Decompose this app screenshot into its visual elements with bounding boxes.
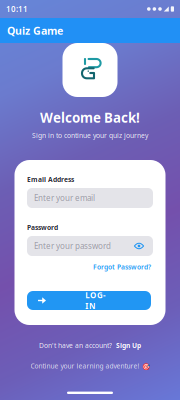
staticText: Quiz Game — [7, 23, 63, 38]
button[interactable]: Forgot Password? — [93, 263, 151, 271]
button[interactable]: Sign Up — [116, 341, 141, 350]
staticText: Forgot Password? — [93, 263, 151, 271]
staticText: Enter your email — [34, 193, 95, 203]
staticText: Don't have an account? — [39, 341, 112, 350]
staticText: Continue your learning adventure! 🎯 — [30, 362, 149, 370]
staticText: Email Address — [27, 175, 74, 184]
staticText: Sign in to continue your quiz journey — [32, 131, 148, 140]
button[interactable]: Enter your password — [27, 236, 153, 256]
staticText: Sign Up — [116, 341, 141, 350]
staticText: Password — [27, 223, 58, 232]
staticText: Welcome Back! — [40, 109, 140, 126]
staticText: Enter your password — [34, 241, 111, 251]
staticText: LOGIN — [85, 290, 110, 311]
button[interactable]: LOGIN — [27, 291, 151, 310]
staticText: 10:11 — [6, 4, 28, 14]
button[interactable]: Enter your email — [27, 188, 153, 208]
